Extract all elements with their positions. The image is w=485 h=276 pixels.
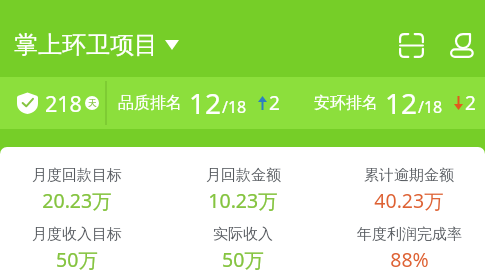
button[interactable]: 累计逾期金额 [326,166,485,214]
staticText: 实际收入 [213,225,273,244]
button[interactable]: 月回款金额 [160,166,326,214]
staticText: 10.23万 [208,187,278,214]
button[interactable]: 掌上环卫项目 [14,26,179,64]
staticText: 20.23万 [42,187,112,214]
staticText: 2 [465,90,476,116]
button[interactable]: 品质排名 [107,77,290,129]
staticText: 安环排名 [314,93,378,113]
staticText: 月度收入目标 [32,225,122,244]
staticText: 88% [390,246,429,273]
button[interactable]: Profile [445,27,481,63]
staticText: 40.23万 [374,187,444,214]
staticText: /18 [418,96,443,118]
staticText: 218 [45,89,82,118]
staticText: 50万 [56,246,98,273]
staticText: /18 [222,96,247,118]
button[interactable]: 月度收入目标 [0,225,160,273]
staticText: 2 [269,90,280,116]
button[interactable]: Scan QR code [393,27,429,63]
button[interactable]: 218 [0,77,105,129]
staticText: 月度回款目标 [32,166,122,185]
staticText: 年度利润完成率 [357,225,462,244]
button[interactable]: 安环排名 [304,77,485,129]
staticText: 品质排名 [118,93,182,113]
staticText: 12 [189,84,222,122]
staticText: 掌上环卫项目 [14,30,158,60]
staticText: 累计逾期金额 [364,166,454,185]
staticText: 天 [88,98,97,109]
button[interactable]: 年度利润完成率 [326,225,485,273]
staticText: 月回款金额 [206,166,281,185]
staticText: 12 [385,84,418,122]
staticText: 50万 [222,246,264,273]
button[interactable]: 实际收入 [160,225,326,273]
button[interactable]: 月度回款目标 [0,166,160,214]
